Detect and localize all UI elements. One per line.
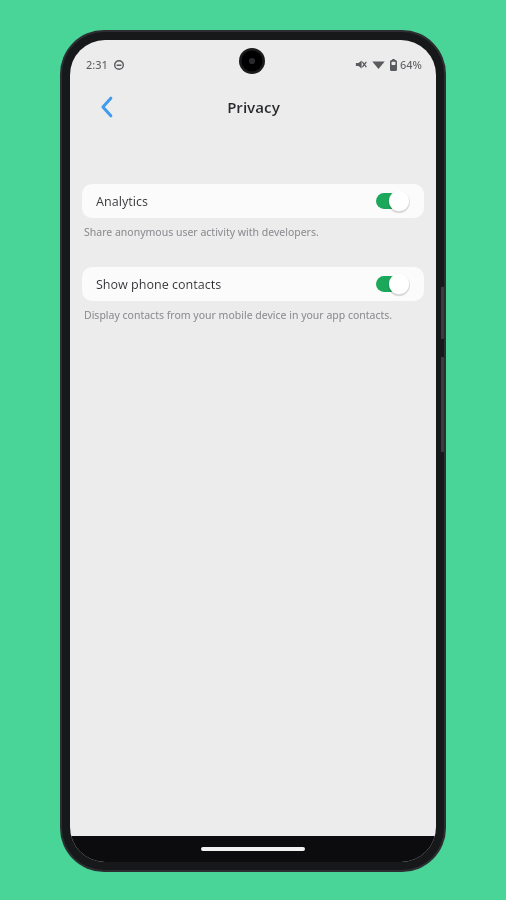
staticText: 2:31 xyxy=(86,57,108,72)
button[interactable]: Back xyxy=(90,90,124,124)
staticText: Show phone contacts xyxy=(96,276,376,293)
staticText: Share anonymous user activity with devel… xyxy=(84,225,319,239)
button[interactable]: Analytics xyxy=(82,184,424,218)
staticText: Display contacts from your mobile device… xyxy=(84,308,393,322)
button[interactable]: Toggle on xyxy=(376,273,410,295)
button[interactable]: Toggle on xyxy=(376,190,410,212)
staticText: Privacy xyxy=(227,97,280,117)
staticText: 64% xyxy=(400,57,422,72)
staticText: Analytics xyxy=(96,193,376,210)
button[interactable]: Show phone contacts xyxy=(82,267,424,301)
